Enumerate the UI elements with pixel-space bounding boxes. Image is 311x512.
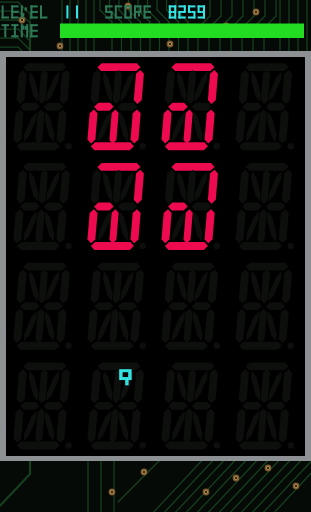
button[interactable]: Game board: [0, 0, 311, 512]
